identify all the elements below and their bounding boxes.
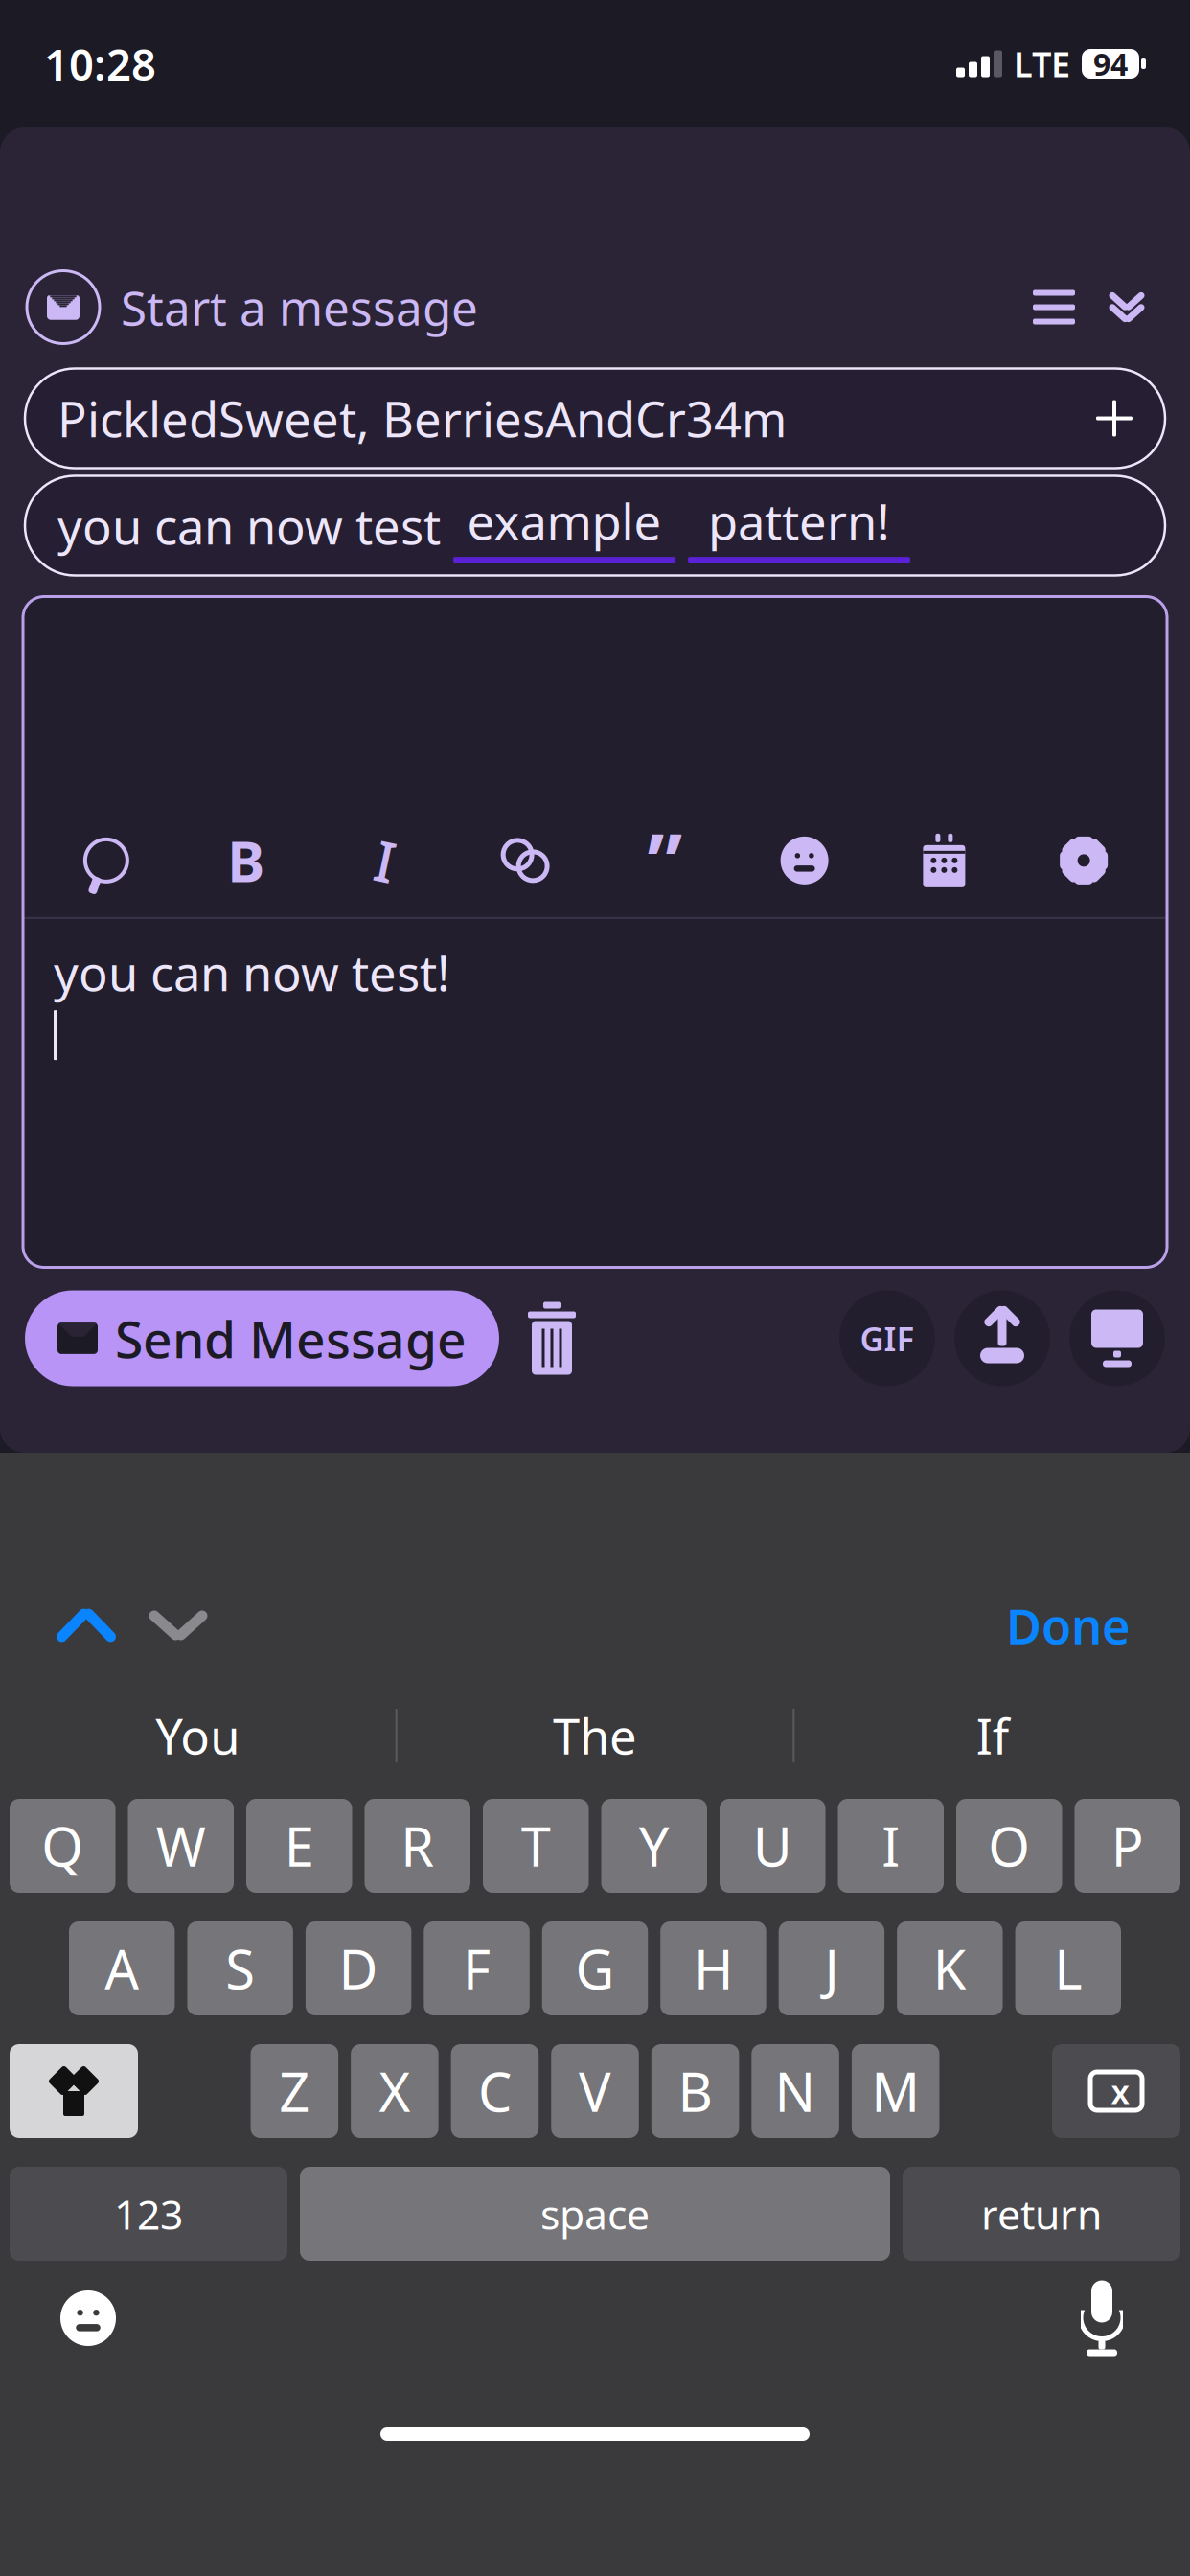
staticText: Y [639, 1810, 670, 1881]
staticText: E [284, 1810, 314, 1881]
staticText: space [540, 2187, 650, 2241]
staticText: You [156, 1703, 240, 1768]
button[interactable]: R [365, 1799, 470, 1893]
button[interactable]: Settings [1014, 804, 1154, 917]
button[interactable]: PickledSweet, BerriesAndCr34m [25, 368, 1165, 468]
staticText: O [988, 1810, 1030, 1881]
button[interactable]: you can now test [25, 476, 1165, 575]
button[interactable]: D [306, 1921, 411, 2015]
button[interactable]: Y [601, 1799, 707, 1893]
staticText: 10:28 [44, 35, 156, 93]
button[interactable]: 123 [10, 2167, 287, 2261]
staticText: I [882, 1810, 900, 1881]
button[interactable]: Q [10, 1799, 115, 1893]
staticText: GIF [860, 1316, 915, 1360]
staticText: PickledSweet, BerriesAndCr34m [57, 386, 787, 451]
staticText: P [1111, 1810, 1144, 1881]
staticText: C [478, 2055, 512, 2127]
button[interactable]: L [1015, 1921, 1121, 2015]
staticText: If [976, 1703, 1009, 1768]
button[interactable]: Collapse [1090, 271, 1163, 344]
staticText: A [105, 1933, 139, 2004]
staticText: 94 [1093, 43, 1128, 84]
button[interactable]: C [451, 2044, 539, 2138]
button[interactable]: Dictation [1056, 2272, 1148, 2364]
button[interactable]: The [397, 1682, 793, 1789]
button[interactable]: Italic [316, 804, 455, 917]
staticText: T [521, 1810, 551, 1881]
button[interactable]: GIF [839, 1290, 935, 1386]
button[interactable]: I [838, 1799, 944, 1893]
staticText: return [981, 2187, 1102, 2241]
button[interactable]: O [956, 1799, 1062, 1893]
staticText: L [1054, 1933, 1082, 2004]
button[interactable]: You [0, 1682, 395, 1789]
button[interactable]: S [187, 1921, 293, 2015]
button[interactable]: Emoji keyboard [42, 2272, 134, 2364]
button[interactable]: M [852, 2044, 939, 2138]
button[interactable]: F [424, 1921, 530, 2015]
button[interactable]: Z [251, 2044, 338, 2138]
button[interactable]: Calendar [874, 804, 1014, 917]
staticText: B [678, 2055, 712, 2127]
button[interactable]: Start a message [27, 271, 478, 344]
staticText: N [775, 2055, 816, 2127]
button[interactable]: Send Message [25, 1290, 499, 1386]
staticText: LTE [1014, 41, 1070, 87]
button[interactable]: Screen share [1069, 1290, 1165, 1386]
button[interactable]: Previous field [40, 1579, 132, 1671]
staticText: pattern! [708, 489, 890, 553]
button[interactable]: T [483, 1799, 589, 1893]
staticText: x [1111, 2069, 1129, 2113]
button[interactable]: U [720, 1799, 825, 1893]
button[interactable]: If [795, 1682, 1190, 1789]
button[interactable]: W [128, 1799, 234, 1893]
button[interactable]: space [300, 2167, 890, 2261]
button[interactable]: Link [455, 804, 595, 917]
staticText: W [156, 1810, 206, 1881]
button[interactable]: G [542, 1921, 648, 2015]
button[interactable]: J [779, 1921, 884, 2015]
staticText: K [933, 1933, 967, 2004]
button[interactable]: E [246, 1799, 352, 1893]
button[interactable]: Quote [595, 804, 735, 917]
staticText: Done [1006, 1593, 1131, 1658]
staticText: M [871, 2055, 920, 2127]
staticText: V [579, 2055, 611, 2127]
button[interactable]: Emoji [735, 804, 874, 917]
staticText: B [227, 823, 265, 898]
button[interactable]: Shift [10, 2044, 138, 2138]
button[interactable]: Next field [132, 1579, 224, 1671]
button[interactable]: Bold [176, 804, 316, 917]
staticText: R [401, 1810, 434, 1881]
button[interactable]: Done [987, 1579, 1150, 1671]
staticText: ” [647, 808, 683, 913]
button[interactable]: P [1075, 1799, 1180, 1893]
staticText: H [694, 1933, 733, 2004]
staticText: you can now test! [54, 940, 450, 1005]
staticText: Start a message [121, 276, 478, 338]
staticText: D [339, 1933, 378, 2004]
button[interactable]: H [660, 1921, 766, 2015]
staticText: F [463, 1933, 491, 2004]
button[interactable]: A [69, 1921, 175, 2015]
staticText: example [467, 489, 662, 553]
button[interactable]: Comment [36, 804, 176, 917]
staticText: X [379, 2055, 410, 2127]
staticText: S [225, 1933, 255, 2004]
button[interactable]: K [897, 1921, 1003, 2015]
button[interactable]: X [351, 2044, 439, 2138]
button[interactable]: N [751, 2044, 839, 2138]
staticText: G [575, 1933, 615, 2004]
staticText: you can now test [57, 493, 453, 558]
button[interactable]: Menu [1018, 271, 1090, 344]
button[interactable]: Backspace [1052, 2044, 1180, 2138]
button[interactable]: return [903, 2167, 1180, 2261]
button[interactable]: Upload attachment [954, 1290, 1050, 1386]
button[interactable]: Delete draft [499, 1290, 605, 1386]
button[interactable]: V [551, 2044, 639, 2138]
button[interactable]: B [651, 2044, 739, 2138]
staticText: I [375, 823, 396, 898]
staticText: J [824, 1933, 839, 2004]
